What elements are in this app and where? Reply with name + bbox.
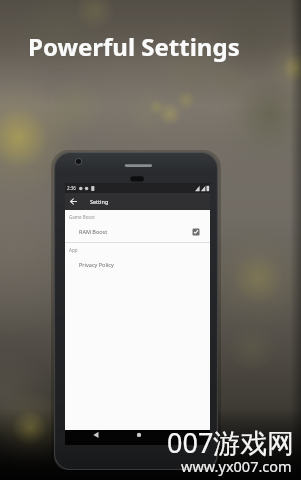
staticText: Setting [90, 198, 109, 205]
button[interactable]: Privacy Policy [79, 258, 210, 270]
staticText: App [69, 247, 78, 253]
staticText: Privacy Policy [79, 261, 114, 268]
button[interactable]: Setting [65, 193, 210, 210]
staticText: 2:36 [67, 185, 76, 191]
staticText: Game Boost [69, 214, 95, 220]
staticText: RAM Boost [79, 228, 108, 235]
staticText: 007游戏网 [167, 424, 295, 461]
staticText: Powerful Settings [28, 30, 240, 63]
staticText: www.yx007.com [181, 456, 292, 476]
button[interactable]: RAM Boost [79, 225, 200, 238]
